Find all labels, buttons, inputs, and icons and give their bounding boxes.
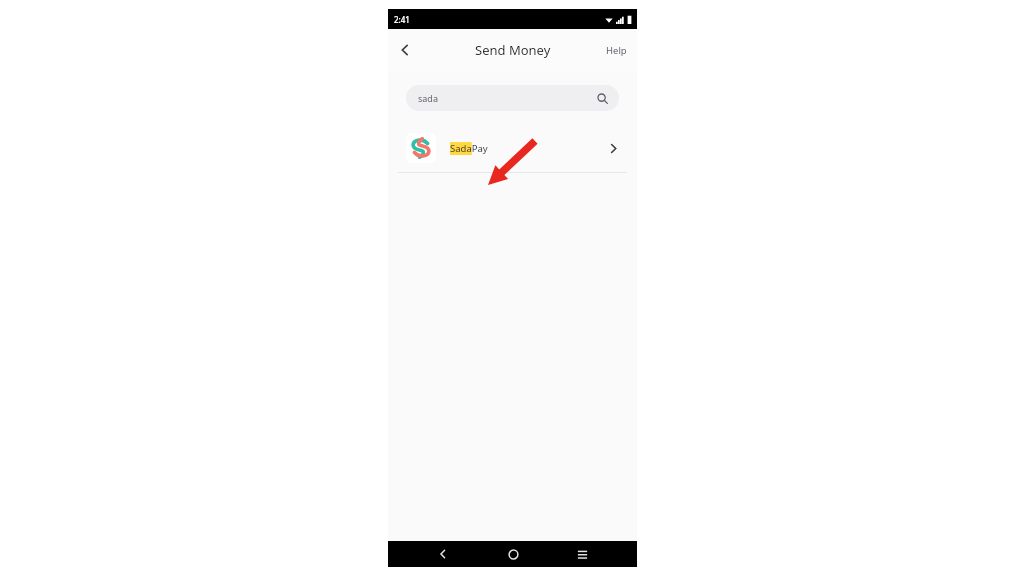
staticText: Send Money bbox=[475, 41, 551, 59]
button[interactable]: Back bbox=[388, 33, 422, 67]
button[interactable]: Back bbox=[428, 541, 458, 567]
button[interactable]: Home bbox=[498, 541, 528, 567]
button[interactable]: Recent apps bbox=[567, 541, 597, 567]
button[interactable]: SadaPay bbox=[388, 124, 637, 172]
button[interactable]: Help bbox=[596, 36, 637, 65]
button[interactable]: sada bbox=[406, 85, 619, 111]
staticText: Help bbox=[606, 44, 627, 57]
staticText: sada bbox=[418, 92, 438, 104]
staticText: SadaPay bbox=[450, 142, 488, 155]
staticText: 2:41 bbox=[394, 14, 410, 25]
